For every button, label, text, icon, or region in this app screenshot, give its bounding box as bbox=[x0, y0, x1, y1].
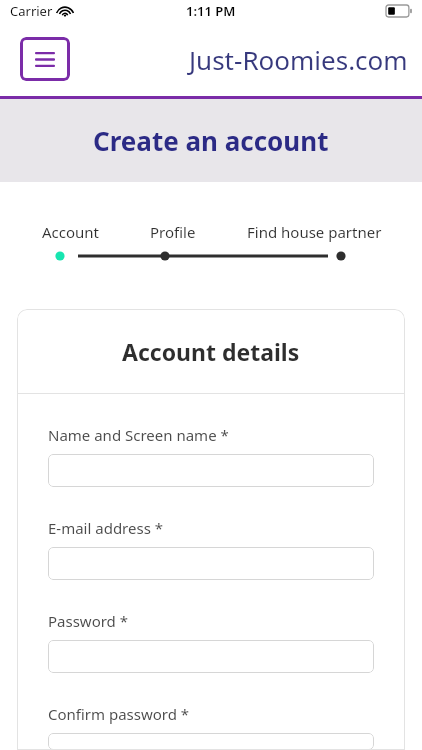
staticText: Find house partner bbox=[247, 222, 382, 242]
button[interactable]: Account bbox=[42, 222, 100, 242]
button[interactable] bbox=[48, 547, 374, 580]
staticText: Just-Roomies.com bbox=[189, 42, 408, 77]
button[interactable]: Profile bbox=[150, 222, 196, 242]
button[interactable] bbox=[48, 733, 374, 750]
button[interactable]: Find house partner bbox=[247, 222, 382, 242]
staticText: E-mail address * bbox=[48, 518, 164, 538]
staticText: Password * bbox=[48, 611, 129, 631]
staticText: Account details bbox=[122, 336, 300, 367]
button[interactable]: Just-Roomies.com bbox=[189, 42, 408, 77]
staticText: Profile bbox=[150, 222, 196, 242]
staticText: Account bbox=[42, 222, 100, 242]
button[interactable] bbox=[48, 640, 374, 673]
button[interactable]: Open navigation menu bbox=[20, 37, 70, 81]
staticText: Name and Screen name * bbox=[48, 425, 229, 445]
staticText: Create an account bbox=[93, 123, 329, 158]
staticText: Carrier bbox=[10, 2, 53, 20]
staticText: Confirm password * bbox=[48, 704, 190, 724]
button[interactable] bbox=[48, 454, 374, 487]
staticText: 1:11 PM bbox=[186, 2, 236, 20]
